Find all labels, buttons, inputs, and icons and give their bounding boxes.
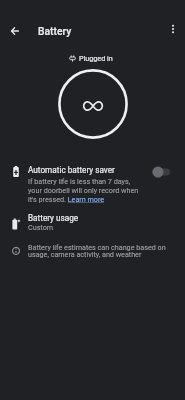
button[interactable]: Automatic battery saver [0, 158, 185, 208]
staticText: Battery usage [28, 213, 79, 223]
staticText: Battery [38, 25, 72, 37]
button[interactable] [162, 19, 184, 41]
staticText: Automatic battery saver [28, 165, 115, 175]
staticText: Custom [28, 223, 54, 231]
staticText: Plugged in [79, 54, 113, 62]
button[interactable] [150, 164, 174, 180]
staticText: If battery life is less than 7 days, you… [28, 177, 139, 204]
button[interactable] [4, 20, 26, 42]
button[interactable]: Battery usage [0, 210, 185, 236]
staticText: Battery life estimates can change based … [28, 243, 166, 259]
